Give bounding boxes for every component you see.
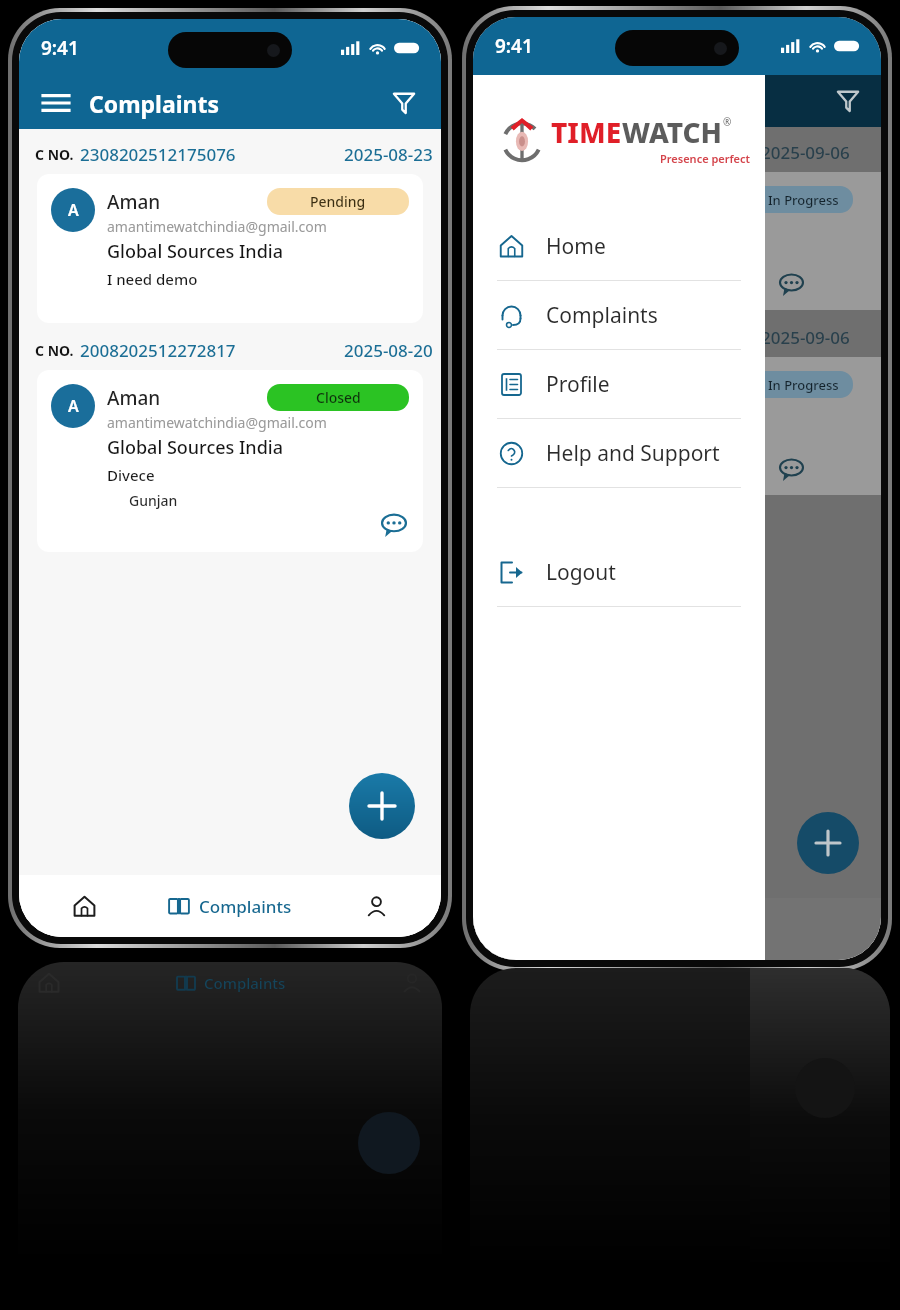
staticText: C NO. [35, 341, 74, 360]
staticText: Aman [107, 189, 161, 215]
staticText: Profile [546, 370, 610, 399]
button[interactable]: Logout [473, 538, 765, 606]
staticText: amantimewatchindia@gmail.com [107, 413, 327, 432]
button[interactable]: Chat [379, 510, 409, 540]
button[interactable]: Add complaint [349, 773, 415, 839]
staticText: In Progress [768, 191, 839, 209]
button[interactable]: A [37, 370, 423, 552]
staticText: Help and Support [546, 439, 720, 468]
button[interactable]: Home [19, 875, 149, 937]
staticText: Complaints [199, 895, 292, 918]
button[interactable]: Filter [833, 86, 863, 116]
staticText: Closed [316, 388, 361, 407]
button[interactable]: Open navigation menu [39, 86, 73, 120]
staticText: A [68, 395, 79, 417]
staticText: Aman [107, 385, 161, 411]
staticText: Complaints [546, 301, 658, 330]
staticText: 2308202512175076 [80, 143, 236, 166]
button[interactable]: Profile [311, 875, 441, 937]
staticText: 2008202512272817 [80, 339, 236, 362]
staticText: amantimewatchindia@gmail.com [107, 217, 327, 236]
staticText: Gunjan [129, 491, 178, 510]
staticText: 2025-08-23 [344, 143, 433, 166]
button[interactable]: A [37, 174, 423, 323]
staticText: 9:41 [495, 33, 533, 59]
staticText: In Progress [768, 376, 839, 394]
staticText: ® [723, 115, 732, 129]
staticText: TIME [551, 113, 622, 151]
staticText: Presence perfect [660, 151, 751, 166]
staticText: 2025-09-06 [761, 141, 850, 164]
staticText: 2025-08-20 [344, 339, 433, 362]
staticText: 9:41 [41, 35, 79, 61]
button[interactable]: Add complaint [797, 812, 859, 874]
staticText: A [68, 199, 79, 221]
staticText: Logout [546, 558, 616, 587]
button[interactable]: Help and Support [473, 419, 765, 487]
staticText: Global Sources India [107, 239, 283, 264]
staticText: Divece [107, 465, 155, 485]
staticText: Complaints [204, 973, 286, 993]
staticText: Complaints [89, 88, 220, 119]
staticText: 2025-09-06 [761, 326, 850, 349]
staticText: I need demo [107, 269, 198, 289]
staticText: C NO. [35, 145, 74, 164]
button[interactable]: Filter [387, 86, 421, 120]
button[interactable]: Complaints [149, 875, 311, 937]
staticText: Home [546, 232, 606, 261]
button[interactable]: Home [473, 212, 765, 280]
button[interactable]: Complaints [473, 281, 765, 349]
button[interactable]: Profile [473, 350, 765, 418]
staticText: Global Sources India [107, 435, 283, 460]
staticText: WATCH [622, 113, 723, 151]
staticText: Pending [310, 192, 366, 211]
